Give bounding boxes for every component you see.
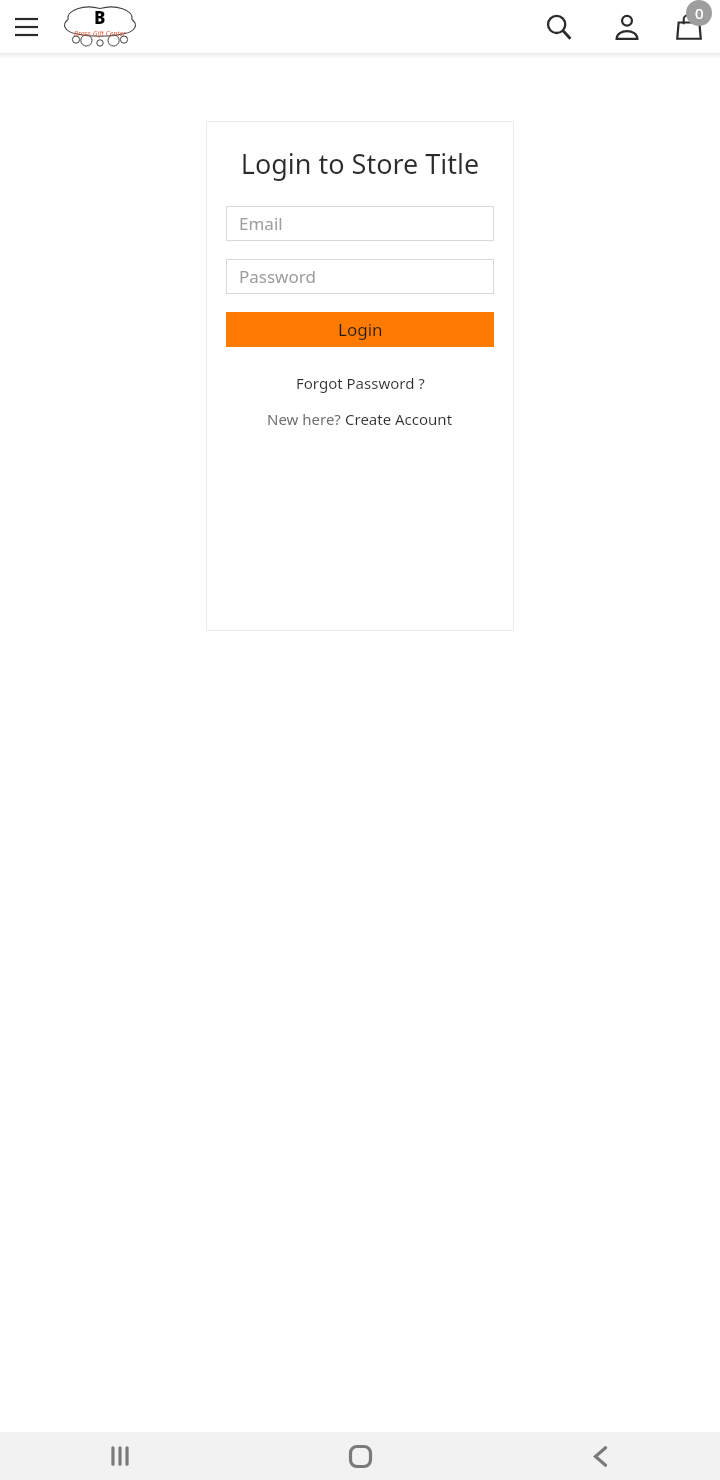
button[interactable]: Back bbox=[480, 1445, 720, 1468]
button[interactable]: Recents bbox=[0, 1445, 240, 1467]
staticText: Create Account bbox=[345, 409, 453, 429]
staticText: B bbox=[94, 6, 106, 29]
button[interactable]: Login bbox=[226, 312, 494, 347]
button[interactable]: Email bbox=[226, 206, 494, 241]
button[interactable]: Home bbox=[240, 1445, 480, 1468]
button[interactable]: Menu bbox=[6, 7, 46, 47]
staticText: Email bbox=[239, 212, 283, 235]
button[interactable]: Create Account bbox=[345, 409, 453, 429]
staticText: 0 bbox=[695, 3, 704, 23]
button[interactable]: Account bbox=[604, 4, 650, 50]
button[interactable]: Password bbox=[226, 259, 494, 294]
staticText: Login bbox=[338, 318, 383, 341]
staticText: New here? bbox=[267, 409, 345, 429]
button[interactable]: Cart bbox=[666, 4, 712, 50]
staticText: Forgot Password ? bbox=[296, 373, 425, 393]
staticText: Login to Store Title bbox=[226, 145, 494, 182]
button[interactable]: Forgot Password ? bbox=[226, 373, 494, 393]
staticText: Brass Gift Center bbox=[74, 29, 126, 39]
staticText: Password bbox=[239, 265, 316, 288]
button[interactable]: Search bbox=[536, 4, 582, 50]
